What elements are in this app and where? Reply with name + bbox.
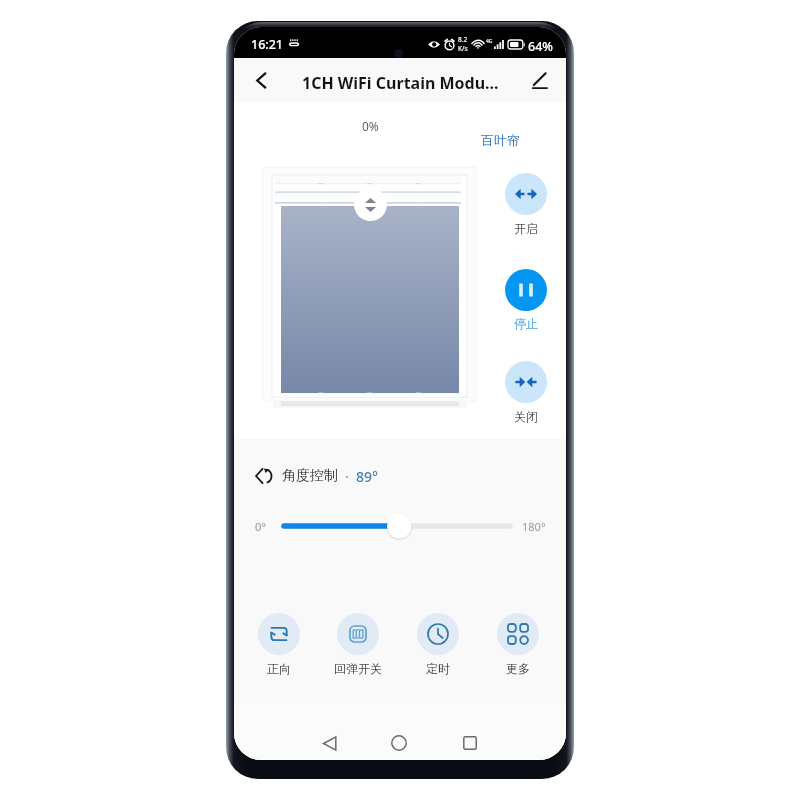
button[interactable]: 停止 [502, 269, 550, 331]
button[interactable]: 回弹开关 [320, 613, 396, 676]
button[interactable]: 更多 [480, 613, 556, 676]
button[interactable]: Back [242, 61, 280, 99]
button[interactable]: 关闭 [502, 361, 550, 424]
staticText: 0% [362, 118, 379, 134]
staticText: 64% [528, 38, 553, 55]
button[interactable]: 角度控制 [255, 459, 378, 493]
staticText: 回弹开关 [334, 661, 382, 676]
staticText: 角度控制 [282, 467, 338, 485]
button[interactable]: Angle slider [282, 512, 512, 540]
button[interactable]: 百叶帘 [481, 132, 520, 148]
staticText: 1CH WiFi Curtain Modu... [302, 72, 499, 94]
staticText: 0° [255, 519, 266, 534]
staticText: · [345, 467, 349, 486]
staticText: 正向 [267, 661, 291, 676]
staticText: 更多 [506, 661, 530, 676]
staticText: 89° [356, 467, 378, 486]
button[interactable]: Back [312, 726, 346, 760]
staticText: 开启 [514, 221, 538, 236]
staticText: 停止 [514, 316, 538, 331]
staticText: 关闭 [514, 409, 538, 424]
button[interactable]: Home [382, 726, 416, 760]
button[interactable]: 开启 [502, 173, 550, 236]
staticText: 4G [486, 38, 493, 45]
button[interactable]: Edit [520, 61, 558, 99]
button[interactable]: Adjust curtain [354, 188, 387, 221]
button[interactable]: 正向 [241, 613, 317, 676]
button[interactable]: Recents [453, 726, 487, 760]
button[interactable]: 定时 [400, 613, 476, 676]
staticText: 180° [522, 519, 546, 534]
staticText: 定时 [426, 661, 450, 676]
staticText: 8.2 [458, 35, 468, 44]
staticText: K/s [458, 44, 468, 53]
staticText: 16:21 [251, 36, 284, 53]
staticText: 百叶帘 [481, 132, 520, 148]
